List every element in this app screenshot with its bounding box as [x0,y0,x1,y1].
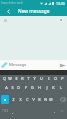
button[interactable]: Q [1,75,7,81]
button[interactable]: Shift [1,95,9,104]
staticText: O [54,76,57,81]
button[interactable]: L [57,84,64,90]
button[interactable]: , [9,107,16,115]
button[interactable]: Send [58,60,67,70]
button[interactable]: G [29,84,36,90]
staticText: Z [12,97,15,102]
button[interactable]: K [50,84,57,90]
staticText: R [21,76,24,81]
staticText: V [32,97,35,102]
button[interactable]: Attach [0,60,9,70]
staticText: Q [3,76,6,81]
staticText: . [54,109,55,114]
button[interactable]: Contact [59,18,63,22]
button[interactable]: D [15,84,22,90]
staticText: B [38,97,41,102]
button[interactable]: H [36,84,43,90]
button[interactable]: I [45,75,52,81]
staticText: New message [18,8,50,15]
button[interactable]: ?123 [1,107,9,115]
staticText: Y [33,76,36,81]
staticText: S [11,85,14,90]
staticText: H [38,85,41,90]
staticText: Message [9,62,27,68]
staticText: , [12,109,13,114]
button[interactable]: . [51,107,58,115]
button[interactable]: Y [31,75,38,81]
button[interactable]: A [3,84,9,90]
staticText: P [61,76,64,81]
button[interactable]: E [13,75,19,81]
staticText: J [46,85,48,90]
staticText: N [44,97,47,102]
staticText: T [27,76,30,81]
staticText: M [49,97,53,102]
staticText: Search the web [1,1,23,5]
staticText: G [31,85,34,90]
button[interactable]: S [9,84,15,90]
staticText: A [5,85,8,90]
staticText: F [25,85,27,90]
button[interactable]: R [19,75,25,81]
staticText: ?123 [2,109,9,113]
button[interactable]: Backspace [59,95,66,104]
button[interactable]: W [7,75,13,81]
button[interactable]: T [25,75,31,81]
button[interactable]: U [38,75,45,81]
staticText: 10:30 [56,1,65,6]
staticText: W [8,76,12,81]
staticText: E [15,76,18,81]
button[interactable]: Enter [58,107,66,115]
button[interactable]: P [59,75,66,81]
button[interactable]: F [22,84,29,90]
staticText: K [52,85,55,90]
button[interactable]: Back [0,6,16,16]
button[interactable]: J [43,84,50,90]
button[interactable]: O [52,75,59,81]
staticText: D [17,85,20,90]
staticText: U [40,76,43,81]
staticText: X [19,97,22,102]
staticText: L [60,85,62,90]
staticText: C [26,97,29,102]
staticText: I [48,76,50,81]
